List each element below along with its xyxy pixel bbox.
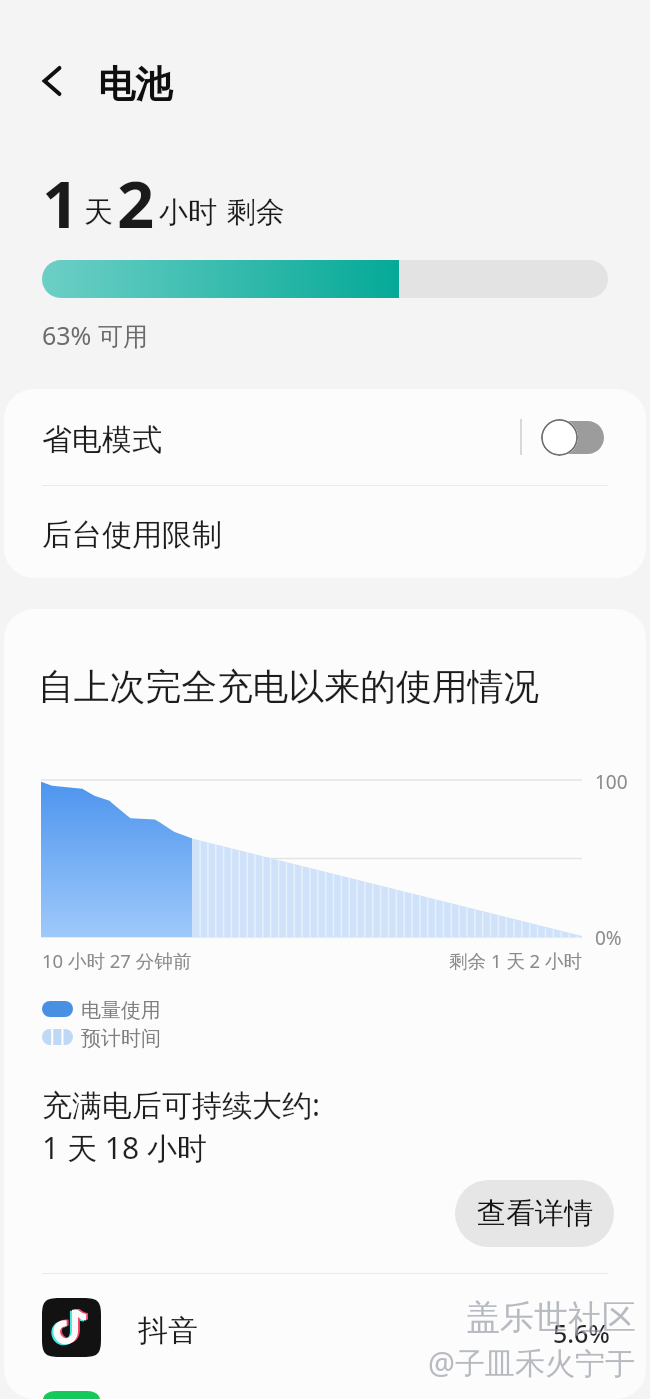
staticText: 省电模式 (42, 421, 162, 459)
staticText: 电池 (98, 61, 172, 108)
button[interactable]: 省电模式 switch (537, 415, 608, 460)
staticText: 10 小时 27 分钟前 (42, 948, 192, 973)
staticText: 天 (84, 194, 113, 231)
staticText: 剩余 1 天 2 小时 (314, 948, 582, 973)
staticText: 自上次完全充电以来的使用情况 (38, 665, 540, 710)
staticText: 抖音 (138, 1312, 198, 1350)
staticText: 电量使用 (81, 998, 161, 1023)
button[interactable]: 后台使用限制 (4, 486, 646, 578)
staticText: 剩余 (227, 194, 285, 231)
staticText: 充满电后可持续大约: (42, 1084, 321, 1125)
button[interactable]: 抖音 (4, 1281, 646, 1391)
staticText: 后台使用限制 (42, 516, 222, 554)
staticText: 1 (42, 159, 80, 248)
staticText: 盖乐世社区 (466, 1296, 636, 1339)
button[interactable]: 查看详情 (455, 1180, 614, 1247)
staticText: @子皿禾火宁于 (428, 1342, 635, 1383)
button[interactable]: 省电模式 (4, 389, 646, 485)
staticText: 1 天 18 小时 (42, 1127, 207, 1168)
staticText: 小时 (159, 194, 217, 231)
button[interactable]: Back (24, 53, 80, 109)
staticText: 63% 可用 (42, 318, 148, 352)
staticText: @子皿禾火宁于 (429, 1344, 636, 1385)
staticText: 0% (595, 925, 622, 951)
staticText: 查看详情 (477, 1195, 593, 1232)
staticText: 100 (595, 769, 628, 795)
staticText: 预计时间 (81, 1026, 161, 1051)
staticText: 盖乐世社区 (467, 1298, 637, 1341)
staticText: 2 (117, 159, 155, 248)
staticText: 5.6% (553, 1316, 610, 1350)
